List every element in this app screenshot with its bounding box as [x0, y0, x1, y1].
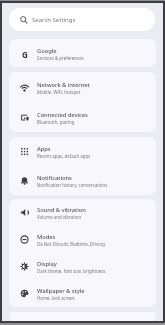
staticText: Do Not Disturb, Bedtime, Driving: [37, 241, 105, 247]
staticText: Recent apps, default apps: [37, 153, 91, 159]
button[interactable]: Connected devices: [9, 102, 156, 132]
button[interactable]: Sound & vibration: [9, 199, 156, 226]
staticText: Home, lock screen: [37, 295, 75, 301]
staticText: Modes: [37, 233, 56, 241]
staticText: Services & preferences: [37, 55, 84, 61]
staticText: Mobile, WiFi, hotspot: [37, 89, 81, 95]
button[interactable]: Display: [9, 253, 156, 280]
button[interactable]: Network & internet: [9, 72, 156, 102]
staticText: Display: [37, 260, 57, 268]
staticText: Connected devices: [37, 111, 88, 119]
staticText: Apps: [37, 145, 51, 153]
staticText: Google: [37, 47, 57, 55]
staticText: Notification history, conversations: [37, 182, 108, 188]
staticText: Wallpaper & style: [37, 287, 85, 295]
button[interactable]: Notifications: [9, 166, 156, 195]
staticText: Search Settings: [32, 16, 76, 24]
staticText: Network & internet: [37, 81, 90, 89]
staticText: Volume and vibration: [37, 214, 82, 220]
button[interactable]: Wallpaper & style: [9, 280, 156, 307]
staticText: Bluetooth, pairing: [37, 119, 75, 125]
button[interactable]: Search Settings: [9, 8, 155, 31]
staticText: Sound & vibration: [37, 206, 86, 214]
button[interactable]: G: [9, 39, 156, 67]
staticText: Notifications: [37, 174, 72, 182]
staticText: Dark theme, font size, brightness: [37, 268, 106, 274]
button[interactable]: Apps: [9, 137, 156, 166]
button[interactable]: Modes: [9, 226, 156, 253]
staticText: G: [22, 49, 28, 58]
